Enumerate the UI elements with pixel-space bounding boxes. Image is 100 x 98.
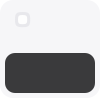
button[interactable]: App icon [15,12,30,27]
button[interactable]: Primary action [5,53,95,93]
